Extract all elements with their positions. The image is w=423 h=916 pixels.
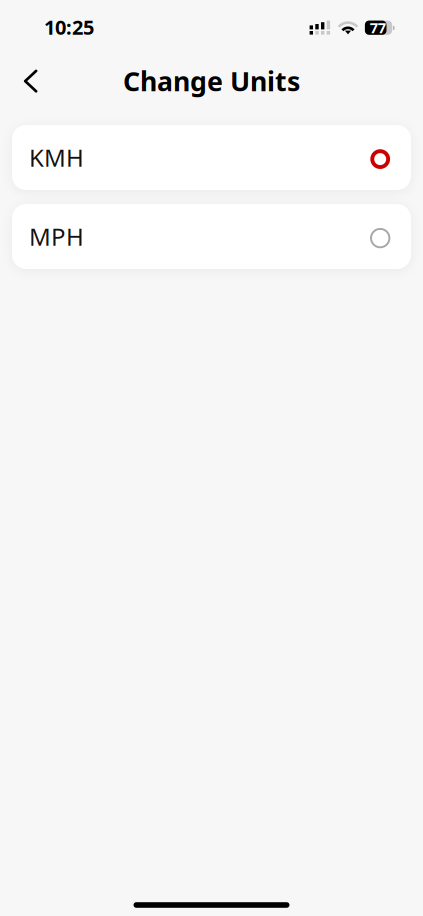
staticText: KMH bbox=[29, 142, 84, 173]
staticText: 10:25 bbox=[44, 14, 94, 40]
button[interactable]: KMH bbox=[12, 125, 411, 190]
staticText: Change Units bbox=[123, 63, 300, 99]
staticText: MPH bbox=[29, 221, 84, 252]
button[interactable]: MPH bbox=[12, 204, 411, 269]
button[interactable]: Back bbox=[9, 59, 53, 103]
staticText: 77 bbox=[370, 18, 386, 37]
